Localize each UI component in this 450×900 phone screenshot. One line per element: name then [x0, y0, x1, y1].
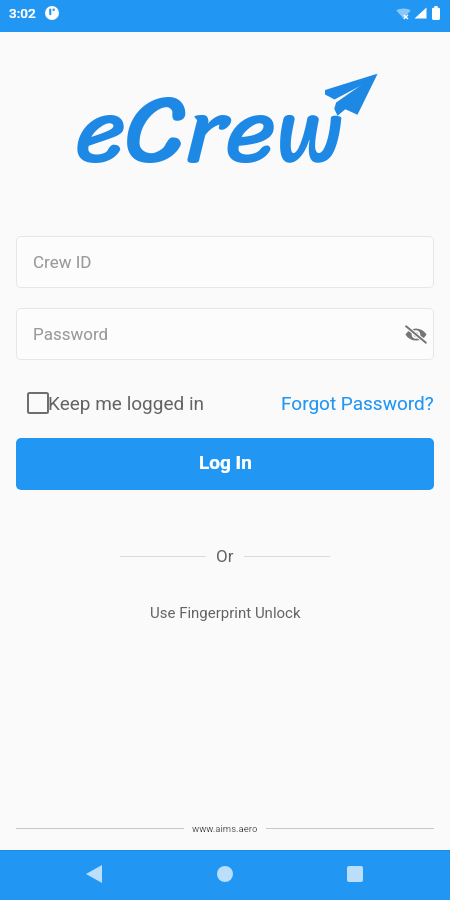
- button[interactable]: Recent apps: [331, 850, 379, 898]
- staticText: 3:02: [9, 5, 36, 21]
- button[interactable]: Forgot Password?: [281, 392, 434, 414]
- staticText: eCrew: [76, 43, 344, 215]
- button[interactable]: Use Fingerprint Unlock: [0, 602, 450, 624]
- button[interactable]: Show password: [399, 317, 433, 351]
- staticText: Password: [33, 324, 109, 344]
- staticText: Use Fingerprint Unlock: [150, 604, 301, 622]
- button[interactable]: Back: [70, 850, 118, 898]
- button[interactable]: Home: [201, 850, 249, 898]
- button[interactable]: Log In: [16, 438, 434, 490]
- staticText: Keep me logged in: [48, 392, 205, 414]
- staticText: Crew ID: [33, 252, 92, 272]
- staticText: Log In: [199, 451, 252, 473]
- button[interactable]: Password: [16, 308, 434, 360]
- staticText: www.aims.aero: [192, 823, 258, 834]
- button[interactable]: Keep me logged in: [16, 392, 205, 414]
- button[interactable]: Crew ID: [16, 236, 434, 288]
- staticText: Forgot Password?: [281, 392, 434, 414]
- staticText: Or: [216, 546, 234, 566]
